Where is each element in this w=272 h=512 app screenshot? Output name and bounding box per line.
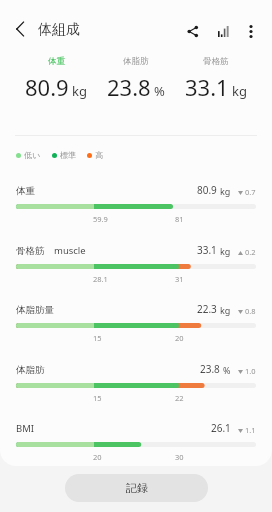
staticText: kg (220, 185, 231, 197)
staticText: 15 (93, 333, 102, 343)
staticText: 81 (175, 214, 184, 224)
staticText: 標準 (60, 150, 76, 160)
staticText: 26.1 (211, 421, 231, 435)
button[interactable]: 骨格筋 (176, 56, 256, 102)
staticText: 20 (93, 452, 102, 462)
staticText: 高 (95, 150, 103, 160)
staticText: 30 (175, 452, 184, 462)
staticText: 28.1 (93, 274, 108, 284)
staticText: kg (220, 304, 231, 316)
staticText: % (154, 82, 165, 100)
button[interactable]: Back (8, 17, 32, 41)
staticText: 体脂肪 (123, 56, 149, 67)
staticText: muscle (54, 244, 86, 257)
staticText: 22 (175, 393, 184, 403)
button[interactable]: BMI (0, 417, 272, 476)
staticText: 20 (175, 333, 184, 343)
staticText: 1.1 (245, 425, 256, 435)
staticText: 記録 (126, 481, 148, 495)
staticText: 低い (24, 150, 41, 160)
button[interactable]: 体脂肪 (0, 358, 272, 417)
staticText: 80.9 (25, 72, 69, 102)
staticText: 31 (175, 274, 184, 284)
button[interactable]: 記録 (65, 474, 208, 502)
staticText: 33.1 (185, 72, 229, 102)
staticText: % (223, 364, 231, 376)
staticText: 15 (93, 393, 102, 403)
staticText: 22.3 (197, 302, 217, 316)
staticText: 骨格筋 (16, 245, 45, 257)
staticText: kg (220, 245, 231, 257)
staticText: 23.8 (200, 362, 220, 376)
button[interactable]: More options (239, 20, 262, 43)
staticText: 骨格筋 (203, 56, 229, 67)
staticText: BMI (16, 422, 35, 435)
staticText: 1.0 (245, 366, 256, 376)
button[interactable]: 骨格筋 (0, 239, 272, 298)
button[interactable]: 体重 (16, 56, 96, 102)
button[interactable]: Trends chart (212, 20, 235, 43)
staticText: 0.7 (245, 187, 256, 197)
button[interactable]: 体脂肪 (96, 56, 176, 102)
button[interactable]: 体重 (0, 179, 272, 238)
staticText: 0.8 (245, 306, 256, 316)
staticText: 0.2 (245, 247, 256, 257)
staticText: 23.8 (107, 72, 151, 102)
button[interactable]: Share (181, 20, 204, 43)
button[interactable]: 体脂肪量 (0, 298, 272, 357)
staticText: kg (72, 82, 87, 100)
staticText: 体重 (48, 56, 65, 67)
staticText: kg (232, 82, 247, 100)
staticText: 59.9 (93, 214, 108, 224)
staticText: 33.1 (197, 243, 217, 257)
staticText: 80.9 (197, 183, 217, 197)
staticText: 体脂肪 (16, 364, 45, 376)
staticText: 体脂肪量 (16, 304, 54, 316)
staticText: 体組成 (38, 21, 80, 39)
staticText: 体重 (16, 185, 35, 197)
